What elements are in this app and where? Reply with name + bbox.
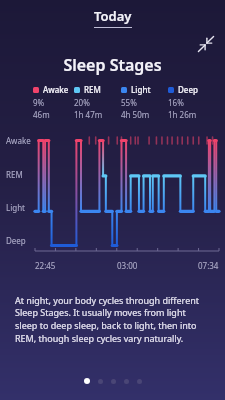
button[interactable]: Collapse xyxy=(197,35,215,53)
staticText: Sleep Stages xyxy=(8,54,217,76)
staticText: 46m xyxy=(33,109,50,120)
staticText: 20% xyxy=(74,97,90,108)
staticText: 07:34 xyxy=(198,260,219,271)
staticText: 9% xyxy=(33,97,45,108)
button[interactable]: Today xyxy=(94,7,132,28)
staticText: 16% xyxy=(168,97,184,108)
staticText: Light xyxy=(6,202,26,213)
staticText: Light xyxy=(131,84,151,95)
staticText: Deep xyxy=(6,235,26,246)
button[interactable]: Page 1 xyxy=(84,378,90,384)
staticText: 1h 26m xyxy=(168,109,197,120)
staticText: 4h 50m xyxy=(121,109,150,120)
staticText: 03:00 xyxy=(117,260,138,271)
staticText: 1h 47m xyxy=(74,109,103,120)
staticText: Today xyxy=(94,7,132,25)
staticText: 22:45 xyxy=(35,260,56,271)
staticText: Awake xyxy=(6,135,31,146)
staticText: REM xyxy=(6,169,23,180)
button[interactable]: Page 4 xyxy=(124,379,129,384)
staticText: 55% xyxy=(121,97,137,108)
button[interactable]: Page 3 xyxy=(111,379,116,384)
staticText: At night, your body cycles through diffe… xyxy=(15,294,210,345)
staticText: Awake xyxy=(43,84,69,95)
button[interactable]: Page 2 xyxy=(98,379,103,384)
staticText: Deep xyxy=(178,84,198,95)
staticText: REM xyxy=(84,84,101,95)
button[interactable]: Page 5 xyxy=(137,379,142,384)
